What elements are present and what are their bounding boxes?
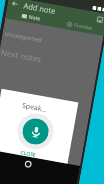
button[interactable]: Start recording [20,116,51,147]
button[interactable]: Save [95,14,104,24]
button[interactable]: Preview [54,16,104,36]
button[interactable]: Note [5,7,56,27]
button[interactable]: CLOSE [20,149,37,159]
staticText: CLOSE [20,149,37,159]
staticText: Next notes [0,46,42,64]
staticText: Speak… [21,101,48,115]
staticText: Preview [73,22,93,32]
button[interactable]: Back [9,0,20,8]
staticText: Uncategorised [4,29,43,43]
staticText: Note [28,13,41,22]
staticText: Add note [23,0,57,16]
